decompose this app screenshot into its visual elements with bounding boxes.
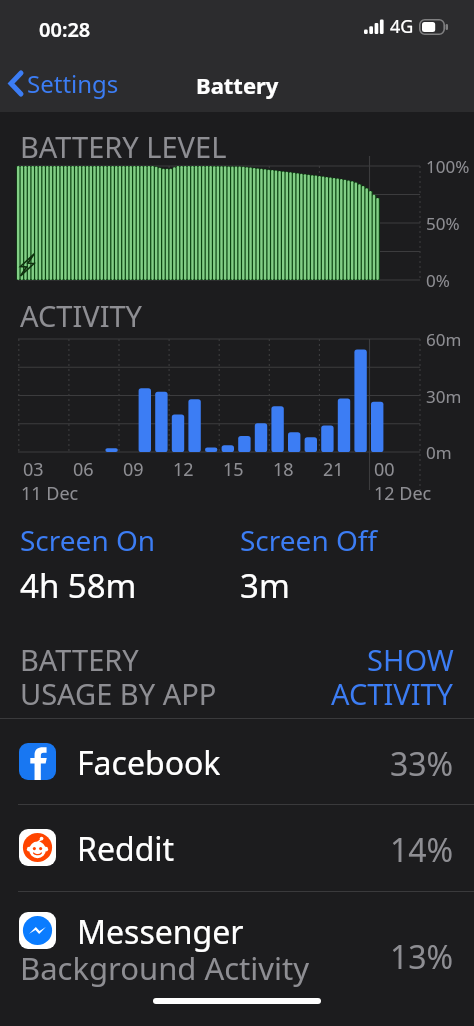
staticText: Battery [196, 70, 279, 100]
staticText: 00 [374, 457, 395, 482]
button[interactable]: Messenger [0, 892, 474, 998]
staticText: Screen Off [240, 521, 378, 559]
staticText: 100% [426, 155, 470, 178]
staticText: Settings [27, 67, 119, 100]
staticText: 0m [426, 441, 452, 464]
staticText: SHOW [367, 640, 454, 679]
button[interactable]: Reddit [0, 805, 474, 891]
staticText: 30m [426, 385, 462, 408]
staticText: 06 [73, 457, 94, 482]
staticText: 12 Dec [374, 481, 432, 506]
staticText: USAGE BY APP [20, 674, 217, 713]
staticText: 0% [426, 269, 450, 292]
button[interactable]: Settings [0, 64, 129, 102]
button[interactable]: SHOW [331, 638, 474, 710]
staticText: BATTERY LEVEL [20, 127, 227, 166]
staticText: 15 [223, 457, 244, 482]
staticText: BATTERY [20, 640, 139, 679]
staticText: 03 [23, 457, 44, 482]
staticText: 18 [273, 457, 294, 482]
staticText: Screen On [20, 521, 156, 559]
staticText: 33% [390, 742, 454, 786]
staticText: 4h 58m [20, 563, 137, 608]
staticText: 60m [426, 328, 462, 351]
button[interactable]: Facebook [0, 719, 474, 804]
staticText: 3m [240, 563, 290, 608]
staticText: 50% [426, 212, 460, 235]
staticText: Reddit [77, 827, 175, 871]
staticText: 13% [390, 935, 454, 979]
staticText: 4G [390, 14, 414, 39]
staticText: ACTIVITY [20, 296, 143, 335]
staticText: Facebook [77, 741, 221, 785]
staticText: 12 [173, 457, 194, 482]
staticText: Messenger [77, 910, 244, 954]
staticText: 21 [323, 457, 344, 482]
staticText: 11 Dec [21, 481, 79, 506]
staticText: Background Activity [20, 947, 310, 989]
staticText: 00:28 [39, 16, 91, 43]
staticText: 09 [123, 457, 144, 482]
staticText: ACTIVITY [331, 674, 454, 713]
staticText: 14% [390, 828, 454, 872]
